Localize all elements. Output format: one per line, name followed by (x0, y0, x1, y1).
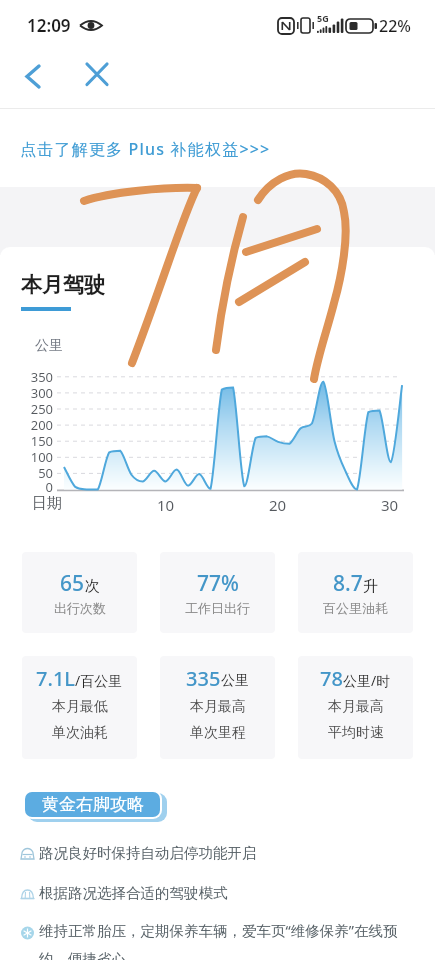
staticText: 公里 (35, 337, 63, 355)
staticText: 次 (85, 577, 100, 596)
button[interactable]: 7.1L (22, 656, 137, 759)
staticText: 100 (18, 448, 53, 466)
button[interactable]: 77% (160, 552, 275, 633)
staticText: 65 (60, 569, 85, 598)
staticText: 12:09 (27, 14, 71, 37)
staticText: 8.7 (333, 569, 363, 598)
staticText: 出行次数 (54, 600, 106, 616)
staticText: 300 (18, 384, 53, 402)
staticText: 10 (155, 495, 176, 515)
staticText: 350 (18, 368, 53, 386)
staticText: 百公里油耗 (323, 600, 388, 616)
staticText: 黄金右脚攻略 (42, 794, 144, 815)
staticText: 单次里程 (190, 724, 246, 742)
button[interactable] (16, 58, 52, 94)
staticText: 日期 (32, 494, 62, 513)
staticText: 工作日出行 (185, 600, 250, 616)
staticText: 维持正常胎压，定期保养车辆，爱车页“维修保养”在线预约，便捷省心 (39, 920, 419, 960)
button[interactable] (80, 58, 116, 94)
staticText: 20 (267, 495, 288, 515)
button[interactable]: 黄金右脚攻略 (25, 792, 160, 817)
staticText: 单次油耗 (52, 724, 108, 742)
staticText: 平均时速 (328, 724, 384, 742)
staticText: 30 (379, 495, 400, 515)
staticText: 0 (18, 478, 53, 496)
staticText: 公里/时 (343, 671, 391, 690)
staticText: 本月最低 (52, 698, 108, 716)
staticText: 78 (320, 665, 343, 692)
staticText: 公里 (221, 672, 249, 690)
staticText: /百公里 (75, 671, 123, 690)
staticText: 22% (379, 15, 411, 37)
button[interactable]: 78 (298, 656, 413, 759)
staticText: 本月最高 (190, 698, 246, 716)
staticText: 路况良好时保持自动启停功能开启 (39, 844, 257, 862)
staticText: 本月驾驶 (21, 272, 105, 298)
button[interactable]: 8.7 (298, 552, 413, 633)
button[interactable]: 65 (22, 552, 137, 633)
staticText: 77% (197, 569, 239, 598)
staticText: 点击了解更多 Plus 补能权益>>> (20, 138, 271, 160)
staticText: 50 (18, 464, 53, 482)
staticText: 7.1L (36, 665, 75, 692)
staticText: 升 (363, 577, 378, 596)
staticText: 根据路况选择合适的驾驶模式 (39, 884, 228, 902)
staticText: 150 (18, 432, 53, 450)
button[interactable]: 335 (160, 656, 275, 759)
button[interactable]: 点击了解更多 Plus 补能权益>>> (18, 136, 269, 158)
staticText: 5G (317, 12, 329, 24)
staticText: 200 (18, 416, 53, 434)
staticText: 335 (186, 665, 221, 692)
staticText: 本月最高 (328, 698, 384, 716)
staticText: 250 (18, 400, 53, 418)
